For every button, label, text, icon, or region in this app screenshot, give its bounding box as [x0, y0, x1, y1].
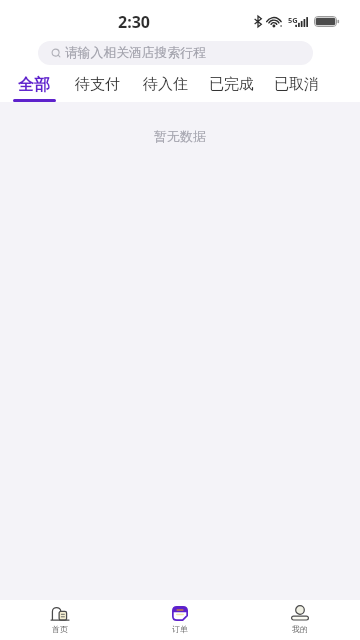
staticText: 待支付 [75, 75, 120, 94]
button[interactable]: 订单 [120, 600, 240, 640]
button[interactable]: 请输入相关酒店搜索行程 [38, 41, 313, 65]
button[interactable]: 已取消 [264, 68, 329, 102]
button[interactable]: 待入住 [133, 68, 198, 102]
button[interactable]: 全部 [8, 68, 60, 102]
staticText: 待入住 [143, 75, 188, 94]
staticText: 全部 [18, 75, 50, 95]
button[interactable]: 待支付 [65, 68, 130, 102]
staticText: 我的 [292, 624, 308, 634]
staticText: 请输入相关酒店搜索行程 [65, 45, 206, 61]
staticText: 2:30 [118, 11, 150, 33]
staticText: 已取消 [274, 75, 319, 94]
staticText: 订单 [172, 624, 188, 634]
button[interactable]: 我的 [240, 600, 360, 640]
staticText: 5G [288, 15, 298, 25]
staticText: 首页 [52, 624, 68, 634]
button[interactable]: 已完成 [199, 68, 264, 102]
staticText: 暂无数据 [154, 128, 206, 144]
button[interactable]: 首页 [0, 600, 120, 640]
staticText: 已完成 [209, 75, 254, 94]
